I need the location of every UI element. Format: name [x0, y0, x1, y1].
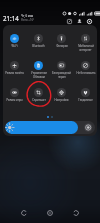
- staticText: Режим полёта: [5, 71, 24, 75]
- staticText: Настройки: [54, 98, 69, 102]
- staticText: Чт, 6 мая: [21, 14, 34, 18]
- button[interactable]: Home: [42, 205, 58, 221]
- button[interactable]: User account: [75, 17, 83, 25]
- staticText: 21:14: [3, 14, 19, 22]
- staticText: Управление: [31, 71, 47, 75]
- staticText: Режим игры: [6, 98, 23, 102]
- button[interactable]: Back: [16, 205, 32, 221]
- button[interactable]: Не беспокоить: [74, 61, 97, 75]
- staticText: Скриншот: [32, 98, 46, 102]
- button[interactable]: Recent apps: [68, 205, 84, 221]
- staticText: Не беспокоить: [76, 71, 96, 75]
- button[interactable]: Wi-Fi: [3, 34, 26, 48]
- staticText: Ясно +16°: [21, 18, 35, 22]
- button[interactable]: Управление: [27, 61, 50, 79]
- button[interactable]: Геоданные: [74, 88, 97, 102]
- button[interactable]: Режим полёта: [3, 61, 26, 75]
- button[interactable]: Edit quick settings: [65, 17, 73, 25]
- staticText: Мобильный: [78, 44, 94, 48]
- button[interactable]: Settings: [85, 17, 93, 25]
- staticText: интернет: [79, 48, 92, 52]
- button[interactable]: Настройки: [50, 88, 73, 102]
- button[interactable]: Мобильный: [74, 34, 97, 52]
- staticText: Фонарик: [56, 44, 68, 48]
- staticText: Wi-Fi: [11, 44, 18, 48]
- button[interactable]: Brightness: [5, 121, 95, 134]
- staticText: экран: [58, 75, 66, 79]
- staticText: Облаком: [33, 75, 45, 79]
- button[interactable]: Режим игры: [3, 88, 26, 102]
- staticText: Bluetooth: [32, 44, 45, 48]
- staticText: Геоданные: [78, 98, 93, 102]
- staticText: Беспроводной: [52, 71, 71, 75]
- button[interactable]: Беспроводной: [50, 61, 73, 79]
- button[interactable]: Bluetooth: [27, 34, 50, 48]
- button[interactable]: Фонарик: [50, 34, 73, 48]
- button[interactable]: Скриншот: [27, 88, 50, 102]
